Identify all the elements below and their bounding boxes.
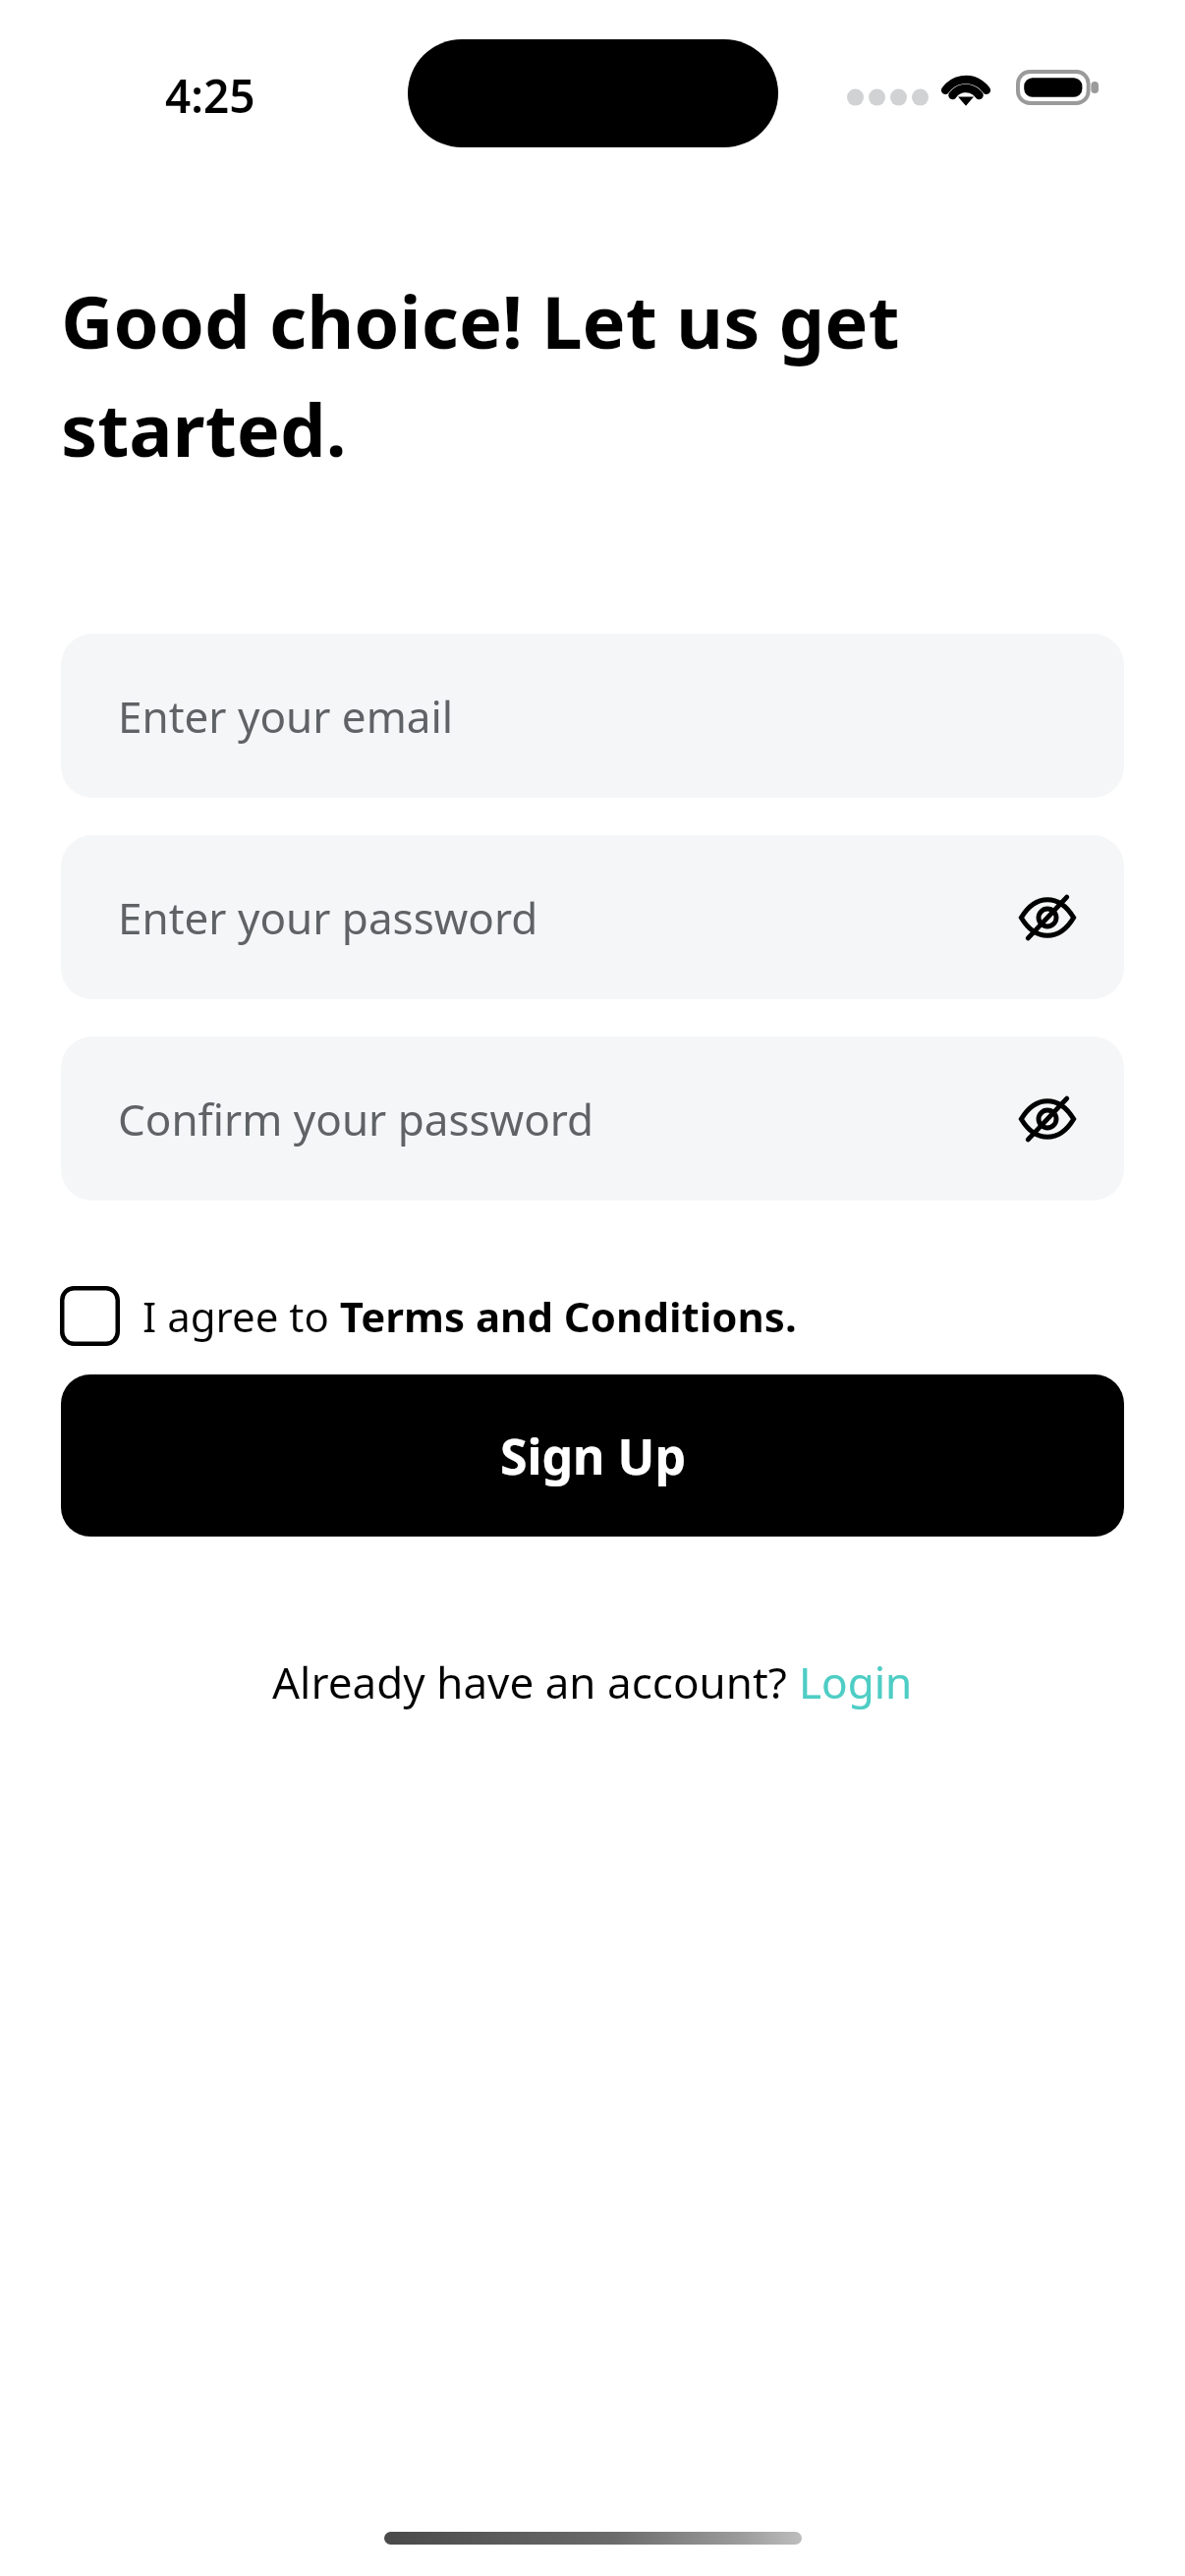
button[interactable]: Already have an account? <box>272 1652 913 1711</box>
staticText: Login <box>799 1652 913 1711</box>
staticText: Good choice! Let us get started. <box>61 271 1146 478</box>
staticText: I agree to Terms and Conditions. <box>142 1288 797 1344</box>
staticText: Confirm your password <box>118 1090 594 1148</box>
staticText: 4:25 <box>165 65 255 127</box>
staticText: Sign Up <box>500 1423 686 1489</box>
staticText: Already have an account? <box>272 1652 799 1711</box>
button[interactable]: Confirm your password <box>61 1036 1124 1201</box>
button[interactable]: Enter your password <box>61 835 1124 999</box>
button[interactable]: Show password <box>1010 880 1085 955</box>
staticText: Enter your email <box>118 687 454 746</box>
staticText: Enter your password <box>118 888 538 947</box>
button[interactable]: Enter your email <box>61 634 1124 798</box>
button[interactable]: Show confirm password <box>1010 1082 1085 1156</box>
button[interactable]: I agree to Terms and Conditions. <box>60 1286 797 1346</box>
button[interactable]: Sign Up <box>61 1374 1124 1537</box>
